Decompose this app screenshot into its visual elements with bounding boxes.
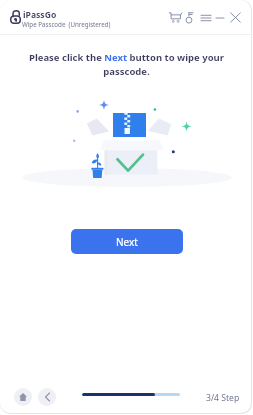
button[interactable]: Close (230, 12, 241, 23)
staticText: Please click the Next button to wipe you… (28, 51, 225, 78)
button[interactable]: Next (71, 229, 183, 254)
button[interactable]: Minimize (216, 14, 224, 22)
button[interactable]: Shopping cart (169, 12, 182, 23)
staticText: iPassGo (23, 9, 57, 21)
staticText: Next (116, 235, 138, 249)
button[interactable]: Register key (186, 12, 193, 23)
button[interactable]: Menu (201, 14, 211, 22)
button[interactable]: Home (14, 388, 32, 406)
staticText: Wipe Passcode (Unregistered) (22, 20, 111, 28)
button[interactable]: Back (38, 388, 56, 406)
staticText: 3/4 Step (206, 392, 240, 404)
